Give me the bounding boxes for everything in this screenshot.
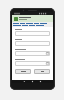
button[interactable]: Cancel	[15, 69, 31, 74]
button[interactable]: Save	[34, 69, 50, 74]
button[interactable]	[12, 15, 53, 22]
button[interactable]: Service End Date	[15, 61, 50, 66]
other: Pick date	[46, 62, 49, 65]
button[interactable]: Charged Code	[15, 41, 50, 46]
button[interactable]: Service Start Date	[15, 51, 50, 56]
button[interactable]: Vendor Name	[15, 31, 50, 36]
other: Pick date	[46, 52, 49, 55]
